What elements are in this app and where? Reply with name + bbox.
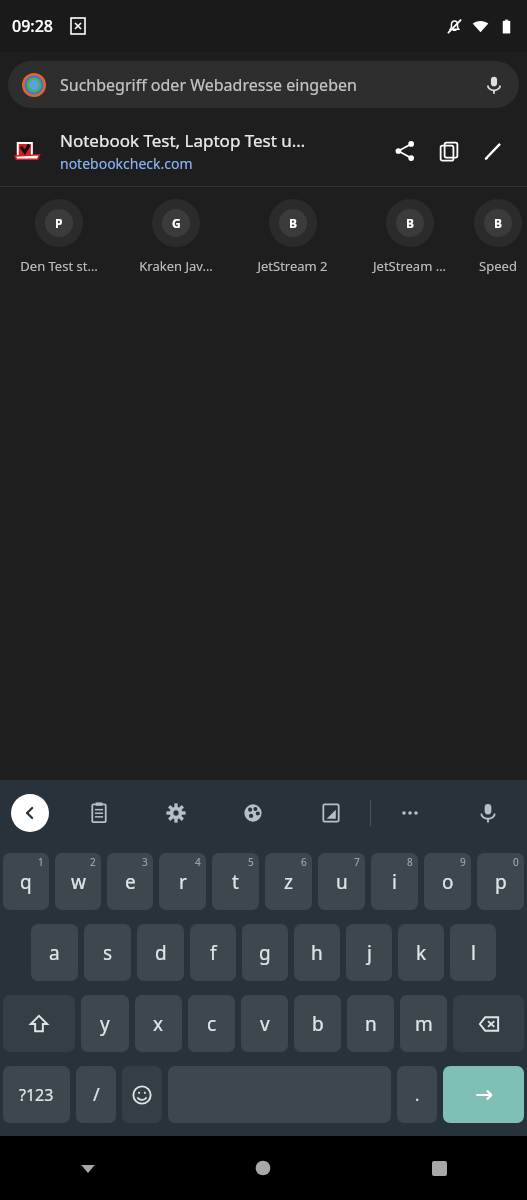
button[interactable]: k: [398, 924, 444, 981]
staticText: /: [93, 1082, 100, 1107]
staticText: d: [155, 940, 167, 966]
staticText: f: [210, 940, 217, 966]
button[interactable]: o: [424, 853, 471, 910]
button[interactable]: Back: [0, 1136, 175, 1200]
button[interactable]: Suchbegriff oder Webadresse eingeben: [8, 61, 519, 108]
button[interactable]: v: [241, 995, 288, 1052]
button[interactable]: Backspace: [453, 995, 524, 1052]
staticText: n: [365, 1011, 377, 1037]
button[interactable]: y: [81, 995, 129, 1052]
button[interactable]: t: [212, 853, 259, 910]
staticText: 0: [513, 855, 519, 869]
button[interactable]: n: [347, 995, 394, 1052]
staticText: k: [416, 940, 427, 966]
staticText: Kraken Jav…: [139, 257, 213, 275]
staticText: Den Test st…: [20, 257, 98, 275]
button[interactable]: g: [242, 924, 288, 981]
staticText: o: [442, 869, 454, 895]
button[interactable]: f: [190, 924, 236, 981]
button[interactable]: B: [351, 199, 468, 275]
button[interactable]: B: [234, 199, 351, 275]
staticText: t: [232, 869, 239, 895]
button[interactable]: j: [346, 924, 392, 981]
button[interactable]: r: [159, 853, 206, 910]
staticText: x: [153, 1011, 164, 1037]
staticText: Notebook Test, Laptop Test u…: [60, 129, 306, 152]
button[interactable]: w: [55, 853, 101, 910]
button[interactable]: Theme: [214, 780, 292, 846]
staticText: ?123: [19, 1084, 54, 1106]
staticText: 7: [354, 855, 360, 869]
button[interactable]: Shift: [3, 995, 75, 1052]
staticText: h: [311, 940, 323, 966]
staticText: l: [471, 940, 476, 966]
button[interactable]: u: [318, 853, 365, 910]
button[interactable]: Notebook Test, Laptop Test u…: [0, 116, 527, 186]
staticText: g: [259, 940, 271, 966]
staticText: B: [494, 215, 502, 231]
button[interactable]: z: [265, 853, 312, 910]
staticText: .: [415, 1084, 420, 1106]
button[interactable]: e: [107, 853, 153, 910]
button[interactable]: Edit: [471, 129, 515, 173]
button[interactable]: x: [135, 995, 182, 1052]
staticText: u: [336, 869, 348, 895]
staticText: 2: [90, 855, 96, 869]
staticText: q: [20, 869, 32, 895]
button[interactable]: Share: [383, 129, 427, 173]
button[interactable]: c: [188, 995, 235, 1052]
staticText: Speed: [479, 257, 517, 275]
staticText: z: [284, 869, 293, 895]
button[interactable]: i: [371, 853, 418, 910]
staticText: B: [406, 215, 414, 231]
button[interactable]: Copy: [427, 129, 471, 173]
button[interactable]: p: [477, 853, 524, 910]
button[interactable]: .: [397, 1066, 437, 1123]
button[interactable]: l: [450, 924, 496, 981]
button[interactable]: d: [137, 924, 184, 981]
staticText: v: [260, 1011, 270, 1037]
staticText: 5: [248, 855, 254, 869]
button[interactable]: ?123: [3, 1066, 70, 1123]
button[interactable]: Voice: [449, 780, 527, 846]
button[interactable]: s: [84, 924, 131, 981]
staticText: 6: [301, 855, 307, 869]
button[interactable]: h: [294, 924, 340, 981]
staticText: 3: [142, 855, 148, 869]
button[interactable]: Clipboard: [60, 780, 137, 846]
staticText: Suchbegriff oder Webadresse eingeben: [60, 74, 483, 96]
staticText: 09:28: [12, 15, 53, 37]
staticText: notebookcheck.com: [60, 154, 193, 173]
staticText: a: [49, 940, 60, 966]
staticText: b: [312, 1011, 324, 1037]
staticText: JetStream 2: [257, 257, 328, 275]
button[interactable]: Settings: [137, 780, 214, 846]
staticText: 1: [38, 855, 44, 869]
button[interactable]: B: [468, 199, 527, 275]
staticText: 9: [460, 855, 466, 869]
staticText: p: [495, 869, 507, 895]
staticText: w: [71, 869, 86, 895]
button[interactable]: Back: [0, 780, 60, 846]
button[interactable]: G: [117, 199, 234, 275]
button[interactable]: Emoji: [122, 1066, 162, 1123]
button[interactable]: b: [294, 995, 341, 1052]
staticText: B: [289, 215, 297, 231]
button[interactable]: q: [3, 853, 49, 910]
button[interactable]: /: [76, 1066, 116, 1123]
staticText: s: [103, 940, 113, 966]
button[interactable]: Resize: [292, 780, 370, 846]
button[interactable]: m: [400, 995, 447, 1052]
staticText: e: [125, 869, 136, 895]
button[interactable]: Enter: [443, 1066, 524, 1123]
staticText: 4: [195, 855, 201, 869]
button[interactable]: a: [31, 924, 78, 981]
staticText: G: [172, 215, 181, 231]
button[interactable]: Recents: [351, 1136, 527, 1200]
button[interactable]: More: [371, 780, 449, 846]
button[interactable]: Home: [175, 1136, 351, 1200]
staticText: r: [179, 869, 187, 895]
button[interactable]: P: [0, 199, 117, 275]
staticText: c: [207, 1011, 217, 1037]
